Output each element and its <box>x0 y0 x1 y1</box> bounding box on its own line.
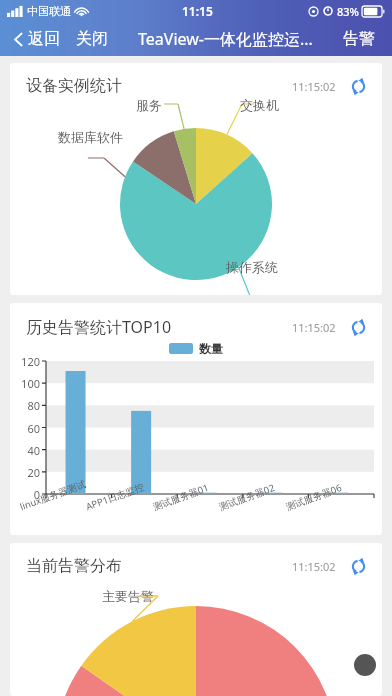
staticText: APP1日志监控 <box>84 480 146 513</box>
staticText: TeaView-一体化监控运... <box>138 28 313 50</box>
staticText: 11:15 <box>182 3 213 19</box>
staticText: 中国联通 <box>27 4 71 18</box>
staticText: 数据库软件 <box>58 129 123 145</box>
staticText: 测试服务器02 <box>217 481 277 513</box>
staticText: 操作系统 <box>226 259 278 275</box>
staticText: 关闭 <box>76 29 108 49</box>
button[interactable]: 当前告警分布 <box>10 543 382 696</box>
staticText: 数量 <box>199 341 223 356</box>
staticText: 当前告警分布 <box>26 556 122 576</box>
staticText: 交换机 <box>240 97 279 113</box>
button[interactable]: Menu <box>354 654 376 676</box>
staticText: 11:15:02 <box>292 320 336 335</box>
button[interactable]: Refresh <box>348 556 368 576</box>
button[interactable]: 告警 <box>340 26 378 52</box>
staticText: linux服务器测试 <box>18 477 88 513</box>
staticText: 返回 <box>28 29 60 49</box>
staticText: 主要告警 <box>102 588 154 604</box>
button[interactable]: 返回 <box>10 26 64 52</box>
button[interactable]: 设备实例统计 <box>10 63 382 295</box>
staticText: 80 <box>10 398 40 413</box>
staticText: 20 <box>10 465 40 480</box>
button[interactable]: 关闭 <box>72 26 112 52</box>
staticText: 11:15:02 <box>292 559 336 574</box>
button[interactable]: 历史告警统计TOP10 <box>10 303 382 535</box>
staticText: 40 <box>10 443 40 458</box>
staticText: 历史告警统计TOP10 <box>26 316 172 338</box>
staticText: 11:15:02 <box>292 79 336 94</box>
staticText: 设备实例统计 <box>26 76 122 96</box>
staticText: 120 <box>10 354 40 369</box>
staticText: 测试服务器01 <box>151 481 211 513</box>
button[interactable]: Refresh <box>348 317 368 337</box>
staticText: 服务 <box>136 97 162 113</box>
staticText: 100 <box>10 376 40 391</box>
staticText: 60 <box>10 421 40 436</box>
staticText: 83% <box>337 4 359 19</box>
staticText: 测试服务器06 <box>284 481 344 513</box>
staticText: 告警 <box>343 29 375 49</box>
button[interactable]: Refresh <box>348 76 368 96</box>
staticText: 0 <box>10 487 40 502</box>
